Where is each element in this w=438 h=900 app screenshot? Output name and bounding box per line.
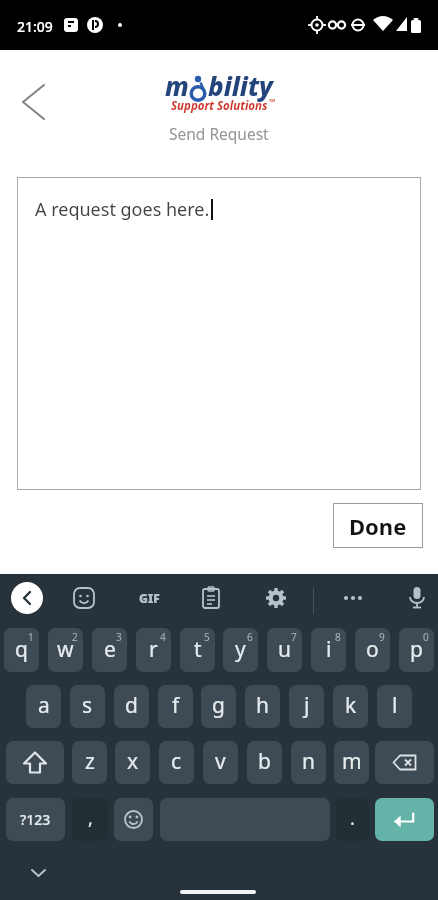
button[interactable]: x	[115, 741, 150, 784]
button[interactable]	[10, 78, 58, 126]
staticText: b	[258, 747, 271, 776]
button[interactable]	[264, 586, 288, 610]
button[interactable]: r	[136, 628, 171, 672]
staticText: g	[212, 691, 225, 720]
staticText: 4	[160, 630, 166, 644]
button[interactable]: w	[48, 628, 83, 672]
button[interactable]: u	[267, 628, 302, 672]
staticText: 6	[247, 630, 253, 644]
button[interactable]: v	[203, 741, 238, 784]
staticText: r	[149, 635, 158, 664]
button[interactable]	[375, 741, 434, 784]
staticText: ,	[88, 806, 93, 831]
button[interactable]: GIF	[134, 586, 164, 610]
staticText: h	[256, 691, 269, 720]
staticText: Support Solutions	[171, 98, 268, 114]
button[interactable]: e	[92, 628, 127, 672]
staticText: 7	[291, 630, 297, 644]
button[interactable]	[341, 586, 365, 610]
staticText: k	[345, 691, 357, 720]
staticText: a	[38, 691, 50, 720]
button[interactable]	[199, 586, 223, 610]
staticText: q	[15, 635, 28, 664]
button[interactable]: n	[291, 741, 326, 784]
staticText: o	[366, 635, 379, 664]
button[interactable]: y	[223, 628, 258, 672]
staticText: s	[82, 691, 93, 720]
staticText: w	[57, 635, 74, 664]
staticText: x	[127, 747, 139, 776]
button[interactable]: A request goes here.	[17, 177, 421, 490]
button[interactable]: z	[72, 741, 107, 784]
staticText: 8	[335, 630, 341, 644]
staticText: f	[172, 691, 180, 720]
staticText: 3	[116, 630, 122, 644]
button[interactable]: s	[70, 685, 105, 728]
staticText: ?123	[20, 810, 51, 829]
staticText: .	[350, 806, 355, 831]
staticText: GIF	[139, 590, 160, 606]
button[interactable]: c	[159, 741, 194, 784]
staticText: l	[392, 691, 398, 720]
staticText: u	[278, 635, 291, 664]
staticText: TM	[269, 98, 276, 103]
staticText: bility	[208, 68, 273, 103]
button[interactable]: k	[333, 685, 368, 728]
button[interactable]: i	[311, 628, 346, 672]
staticText: 5	[204, 630, 210, 644]
staticText: i	[326, 635, 332, 664]
button[interactable]: m	[334, 741, 369, 784]
staticText: p	[410, 635, 423, 664]
staticText: e	[104, 635, 116, 664]
button[interactable]: ,	[72, 798, 108, 841]
button[interactable]: b	[247, 741, 282, 784]
staticText: Send Request	[169, 123, 269, 144]
staticText: 21:09	[17, 17, 53, 36]
button[interactable]	[114, 798, 153, 841]
button[interactable]: ?123	[6, 798, 65, 841]
button[interactable]: t	[180, 628, 215, 672]
staticText: j	[304, 691, 310, 720]
button[interactable]: d	[114, 685, 149, 728]
staticText: 2	[72, 630, 78, 644]
staticText: m	[165, 68, 189, 103]
staticText: m	[342, 747, 362, 776]
button[interactable]: o	[355, 628, 390, 672]
staticText: d	[125, 691, 138, 720]
staticText: y	[235, 635, 246, 664]
button[interactable]: p	[399, 628, 434, 672]
staticText: 1	[28, 630, 34, 644]
button[interactable]: a	[26, 685, 61, 728]
button[interactable]	[405, 585, 429, 611]
button[interactable]: g	[201, 685, 236, 728]
button[interactable]	[6, 741, 64, 784]
staticText: z	[85, 747, 95, 776]
button[interactable]	[375, 798, 434, 841]
button[interactable]: Done	[333, 503, 423, 548]
button[interactable]	[72, 586, 96, 610]
staticText: 9	[379, 630, 385, 644]
button[interactable]	[11, 582, 43, 614]
staticText: 0	[423, 630, 429, 644]
staticText: A request goes here.	[35, 197, 210, 222]
staticText: v	[215, 747, 226, 776]
staticText: n	[302, 747, 315, 776]
staticText: c	[171, 747, 182, 776]
button[interactable]: .	[336, 798, 369, 841]
button[interactable]: j	[289, 685, 324, 728]
staticText: t	[194, 635, 202, 664]
staticText: Done	[349, 511, 407, 541]
button[interactable]: h	[245, 685, 280, 728]
button[interactable]: l	[377, 685, 412, 728]
button[interactable]: f	[158, 685, 193, 728]
button[interactable]: q	[4, 628, 39, 672]
